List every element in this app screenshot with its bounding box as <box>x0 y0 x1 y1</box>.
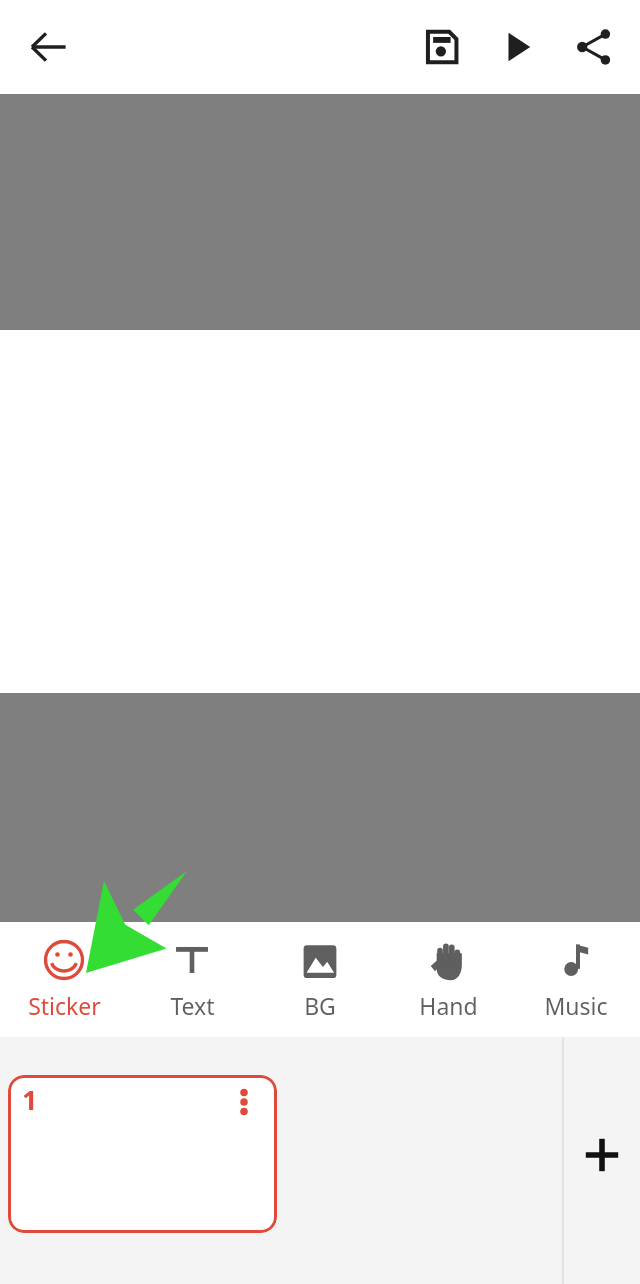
button[interactable]: Text <box>128 922 256 1037</box>
button[interactable]: 1 <box>8 1075 277 1233</box>
button[interactable]: Share <box>556 9 632 85</box>
staticText: Sticker <box>28 990 101 1021</box>
button[interactable]: Add scene <box>570 1123 634 1187</box>
staticText: Music <box>544 990 608 1021</box>
button[interactable]: Back <box>14 13 82 81</box>
button[interactable]: BG <box>256 922 384 1037</box>
button[interactable]: Sticker <box>0 922 128 1037</box>
staticText: Hand <box>419 990 478 1021</box>
staticText: Text <box>170 990 215 1021</box>
staticText: BG <box>304 990 336 1021</box>
button[interactable]: Play <box>480 9 556 85</box>
button[interactable]: Music <box>512 922 640 1037</box>
button[interactable]: Scene options <box>221 1079 267 1125</box>
staticText: 1 <box>22 1081 38 1118</box>
button[interactable]: Save <box>404 9 480 85</box>
button[interactable]: Hand <box>384 922 512 1037</box>
